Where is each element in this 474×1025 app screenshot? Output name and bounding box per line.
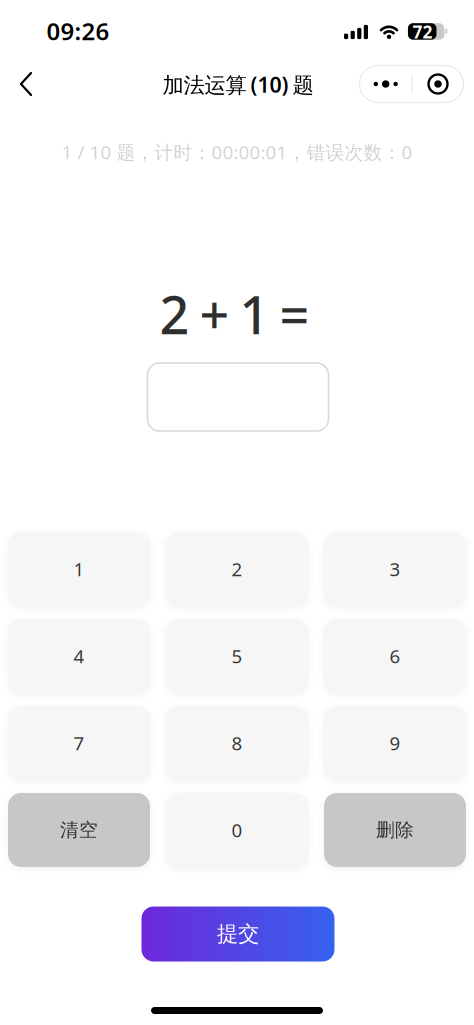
staticText: 72 (412, 20, 432, 43)
staticText: 删除 (376, 818, 414, 841)
staticText: 1 / 10 题，计时：00:00:01，错误次数：0 (61, 140, 412, 164)
button[interactable]: 清空 (8, 793, 150, 867)
button[interactable]: Back (6, 64, 46, 104)
staticText: 5 (231, 644, 242, 668)
staticText: 09:26 (46, 15, 109, 47)
staticText: 8 (231, 731, 242, 755)
staticText: 7 (73, 731, 84, 755)
button[interactable]: 9 (324, 706, 466, 780)
button[interactable]: 5 (166, 619, 308, 693)
staticText: 2 (159, 279, 189, 349)
staticText: 0 (231, 818, 242, 842)
button[interactable]: 2 (166, 532, 308, 606)
staticText: 提交 (217, 921, 259, 947)
button[interactable]: Close (412, 65, 464, 102)
staticText: 4 (73, 644, 84, 668)
staticText: 2 (231, 557, 242, 581)
button[interactable]: More (359, 65, 411, 102)
staticText: 加法运算 (10) 题 (162, 70, 313, 99)
staticText: 9 (389, 731, 400, 755)
button[interactable]: 7 (8, 706, 150, 780)
button[interactable]: 1 (8, 532, 150, 606)
staticText: = (279, 279, 309, 349)
button[interactable]: 删除 (324, 793, 466, 867)
staticText: 1 (239, 279, 269, 349)
button[interactable]: 6 (324, 619, 466, 693)
staticText: 3 (389, 557, 400, 581)
staticText: + (199, 279, 229, 349)
button[interactable]: 提交 (141, 906, 334, 961)
button[interactable]: 3 (324, 532, 466, 606)
button[interactable]: 8 (166, 706, 308, 780)
staticText: 清空 (60, 818, 98, 841)
staticText: 6 (389, 644, 400, 668)
staticText: 1 (73, 557, 84, 581)
button[interactable]: 4 (8, 619, 150, 693)
button[interactable]: 0 (166, 793, 308, 867)
